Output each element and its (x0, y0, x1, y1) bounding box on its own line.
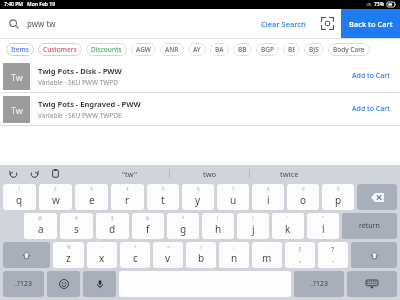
staticText: b (198, 251, 205, 265)
button[interactable]: ! (285, 242, 315, 268)
button[interactable]: $ (96, 213, 129, 239)
staticText: 4 (126, 186, 129, 192)
button[interactable]: 5 (147, 184, 179, 210)
button[interactable]: Shift (351, 242, 397, 268)
staticText: ? (331, 245, 335, 255)
staticText: + (134, 244, 137, 250)
button[interactable]: BB (233, 43, 252, 56)
button[interactable]: Shift (3, 242, 50, 268)
staticText: * (182, 215, 185, 221)
button[interactable]: + (120, 242, 150, 268)
button[interactable]: Clear Search (253, 9, 314, 38)
button[interactable]: AGW (131, 43, 156, 56)
button[interactable]: Customers (38, 43, 82, 56)
staticText: z (66, 251, 71, 265)
button[interactable]: two (170, 165, 249, 182)
button[interactable]: Dictate (83, 271, 116, 297)
button[interactable]: Backspace (357, 184, 397, 210)
staticText: ) (252, 215, 254, 221)
button[interactable]: twice (250, 165, 329, 182)
button[interactable]: ' (272, 213, 304, 239)
staticText: i (267, 193, 270, 207)
staticText: 7:40 PM (4, 1, 23, 8)
button[interactable]: 6 (182, 184, 214, 210)
button[interactable]: % (53, 242, 84, 268)
staticText: x (99, 251, 105, 265)
button[interactable]: BI (283, 43, 300, 56)
staticText: AGW (136, 45, 151, 54)
staticText: Clear Search (261, 19, 306, 29)
button[interactable]: Hide keyboard (347, 271, 397, 297)
button[interactable]: Discounts (86, 43, 127, 56)
staticText: m (262, 251, 272, 265)
staticText: e (89, 193, 95, 207)
button[interactable]: Emoji (47, 271, 80, 297)
button[interactable]: Body Care (328, 43, 370, 56)
staticText: BB (238, 45, 247, 54)
button[interactable]: Items (6, 43, 34, 56)
button[interactable]: .?123 (3, 271, 44, 297)
button[interactable]: = (153, 242, 183, 268)
staticText: " (322, 215, 324, 221)
button[interactable]: return (342, 213, 397, 239)
staticText: .?123 (311, 279, 328, 289)
button[interactable]: Scan barcode (314, 9, 341, 38)
button[interactable]: # (60, 213, 93, 239)
staticText: Body Care (333, 45, 365, 54)
staticText: ! (299, 245, 301, 255)
button[interactable]: pww tw (0, 9, 253, 38)
button[interactable]: ( (202, 213, 234, 239)
staticText: = (167, 244, 170, 250)
button[interactable]: 8 (252, 184, 284, 210)
staticText: d (109, 222, 116, 236)
button[interactable]: " (307, 213, 339, 239)
button[interactable]: 4 (111, 184, 144, 210)
button[interactable]: : (252, 242, 282, 268)
button[interactable]: @ (24, 213, 57, 239)
button[interactable]: "tw" (91, 165, 169, 182)
button[interactable]: 7 (217, 184, 249, 210)
button[interactable]: AY (188, 43, 206, 56)
staticText: u (230, 193, 237, 207)
button[interactable]: 2 (39, 184, 72, 210)
button[interactable]: 1 (3, 184, 36, 210)
staticText: Back to Cart (349, 19, 393, 29)
button[interactable]: BGP (256, 43, 279, 56)
button[interactable]: Add to Cart (342, 60, 400, 92)
button[interactable]: BA (210, 43, 229, 56)
staticText: l (322, 222, 325, 236)
button[interactable]: Paste (50, 168, 61, 179)
button[interactable]: * (167, 213, 199, 239)
staticText: 5 (162, 186, 165, 192)
staticText: BI (288, 45, 295, 54)
staticText: r (125, 193, 130, 207)
button[interactable]: ; (219, 242, 249, 268)
button[interactable]: Redo (29, 168, 40, 179)
button[interactable]: 9 (287, 184, 319, 210)
button[interactable]: / (186, 242, 216, 268)
button[interactable]: Tw (0, 60, 400, 92)
button[interactable]: & (132, 213, 164, 239)
button[interactable]: BJS (304, 43, 324, 56)
button[interactable]: ) (237, 213, 269, 239)
button[interactable]: Back to Cart (341, 9, 400, 38)
button[interactable]: 0 (322, 184, 354, 210)
staticText: - (101, 244, 103, 250)
staticText: 2 (54, 186, 57, 192)
staticText: 0 (337, 186, 340, 192)
staticText: , (299, 255, 301, 265)
staticText: y (195, 193, 201, 207)
button[interactable]: Undo (8, 168, 19, 179)
staticText: ' (287, 215, 289, 221)
button[interactable]: Add to Cart (342, 93, 400, 125)
button[interactable]: Tw (0, 93, 400, 125)
button[interactable]: 3 (75, 184, 108, 210)
button[interactable]: .?123 (294, 271, 344, 297)
button[interactable]: - (87, 242, 117, 268)
staticText: Tw (11, 104, 23, 116)
staticText: w (52, 193, 60, 207)
button[interactable]: ANR (160, 43, 184, 56)
button[interactable]: ? (318, 242, 348, 268)
staticText: AY (193, 45, 201, 54)
